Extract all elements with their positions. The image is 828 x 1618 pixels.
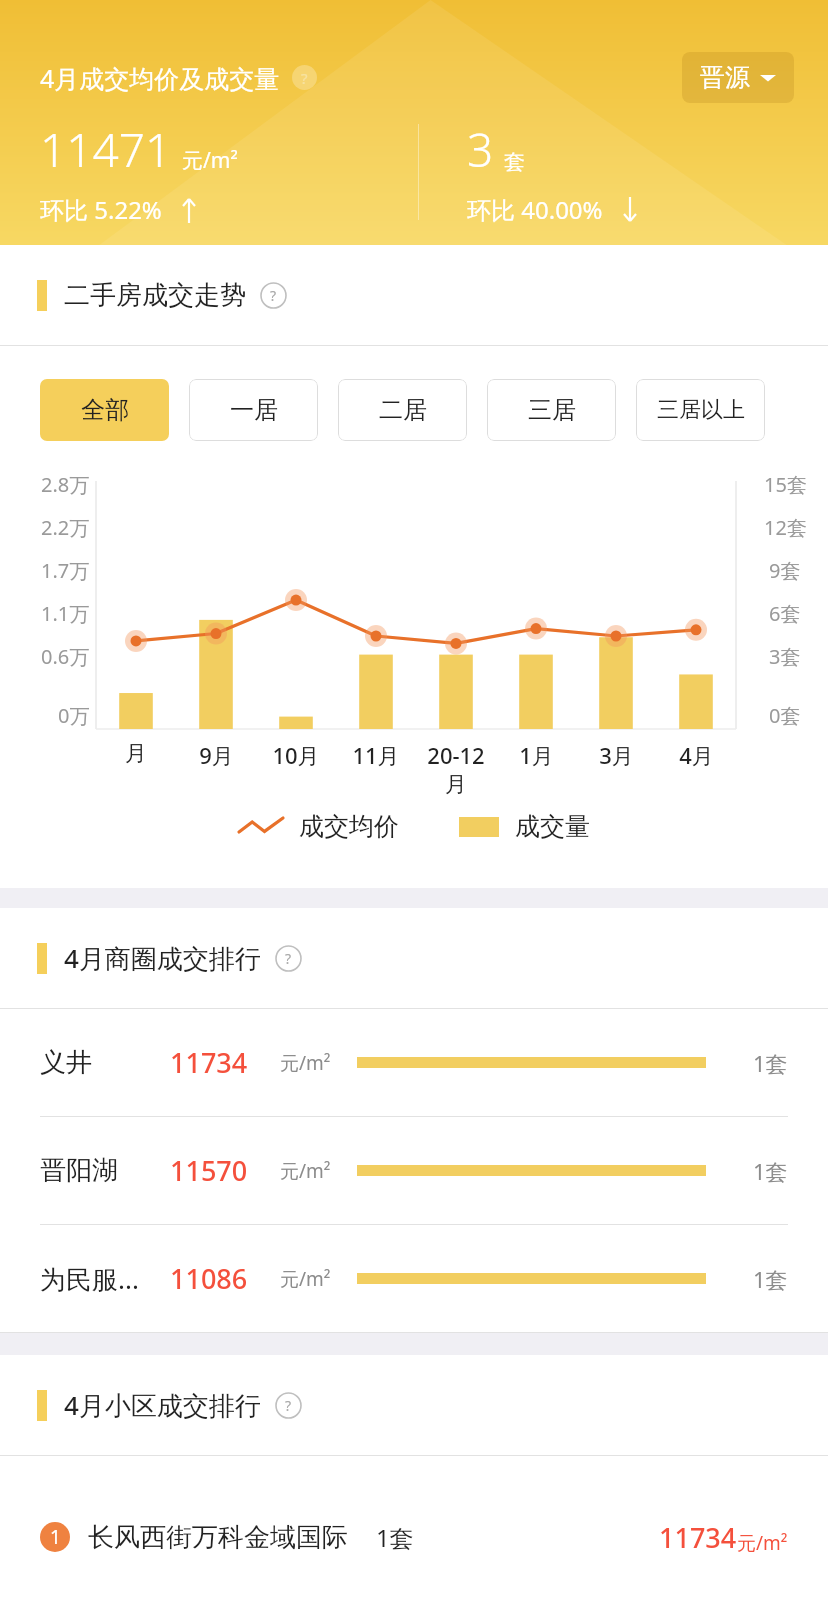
staticText: 3套	[769, 643, 801, 670]
staticText: 义井	[40, 1046, 92, 1079]
staticText: 为民服...	[40, 1261, 139, 1297]
staticText: 二手房成交走势	[64, 279, 246, 312]
staticText: 套	[504, 149, 525, 175]
staticText: 11月	[352, 740, 400, 770]
staticText: 1套	[753, 1264, 788, 1294]
button[interactable]: 义井	[0, 1009, 828, 1116]
staticText: 0.6万	[41, 643, 90, 670]
button[interactable]: Help	[275, 1392, 302, 1419]
staticText: 20-12 月	[427, 740, 485, 799]
staticText: 环比 5.22%	[40, 193, 162, 226]
staticText: 1月	[519, 740, 554, 770]
staticText: 11734	[659, 1519, 737, 1556]
staticText: 15套	[764, 471, 807, 498]
staticText: ?	[301, 68, 308, 88]
button[interactable]: 三居	[487, 379, 616, 441]
staticText: 元/m²	[182, 146, 238, 175]
staticText: 4月成交均价及成交量	[40, 61, 280, 95]
staticText: 元/m²	[737, 1530, 788, 1556]
button[interactable]: Help	[275, 945, 302, 972]
staticText: 1.7万	[41, 557, 90, 584]
staticText: ?	[285, 1396, 292, 1415]
staticText: 4月小区成交排行	[64, 1387, 261, 1423]
staticText: 0套	[769, 702, 801, 729]
staticText: 长风西街万科金域国际	[88, 1521, 348, 1554]
staticText: 元/m²	[280, 1266, 331, 1292]
staticText: 9套	[769, 557, 801, 584]
staticText: 成交量	[515, 811, 590, 842]
staticText: 成交均价	[299, 811, 399, 842]
button[interactable]: 一居	[189, 379, 318, 441]
staticText: 三居以上	[657, 396, 745, 424]
button[interactable]: 晋源	[682, 52, 794, 103]
staticText: 1.1万	[41, 600, 90, 627]
staticText: 3	[467, 118, 494, 181]
staticText: 1套	[376, 1521, 414, 1554]
staticText: 1	[50, 1524, 61, 1550]
button[interactable]: 三居以上	[636, 379, 765, 441]
staticText: 元/m²	[280, 1050, 331, 1076]
staticText: 11734	[170, 1044, 248, 1081]
staticText: 元/m²	[280, 1158, 331, 1184]
staticText: 12套	[764, 514, 807, 541]
staticText: 月	[125, 740, 147, 768]
staticText: 0万	[58, 702, 90, 729]
staticText: ?	[270, 286, 277, 305]
staticText: 二居	[379, 395, 427, 425]
staticText: 9月	[199, 740, 234, 770]
button[interactable]: Help	[292, 65, 317, 90]
staticText: 三居	[528, 395, 576, 425]
staticText: 2.2万	[41, 514, 90, 541]
staticText: 11570	[170, 1152, 248, 1189]
staticText: 4月	[679, 740, 714, 770]
staticText: 3月	[599, 740, 634, 770]
staticText: 全部	[81, 395, 129, 425]
staticText: 晋阳湖	[40, 1154, 118, 1187]
staticText: 环比 40.00%	[467, 193, 603, 226]
staticText: 一居	[230, 395, 278, 425]
staticText: 6套	[769, 600, 801, 627]
button[interactable]: 晋阳湖	[0, 1117, 828, 1224]
button[interactable]: 为民服...	[0, 1225, 828, 1332]
staticText: 2.8万	[41, 471, 90, 498]
staticText: 11471	[40, 118, 172, 181]
button[interactable]: 全部	[40, 379, 169, 441]
staticText: ?	[285, 949, 292, 968]
button[interactable]: 1	[0, 1456, 828, 1618]
button[interactable]: 二居	[338, 379, 467, 441]
staticText: 11086	[170, 1260, 248, 1297]
staticText: 1套	[753, 1048, 788, 1078]
staticText: 晋源	[700, 62, 750, 93]
staticText: 4月商圈成交排行	[64, 940, 261, 976]
staticText: 1套	[753, 1156, 788, 1186]
button[interactable]: Help	[260, 282, 287, 309]
staticText: 10月	[272, 740, 320, 770]
